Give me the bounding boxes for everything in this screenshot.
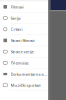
button[interactable]: Crtani — [0, 24, 48, 35]
button[interactable]: TV emisije — [0, 57, 48, 69]
button[interactable]: Filmovi — [0, 1, 48, 13]
staticText: Serije — [10, 15, 20, 21]
staticText: TV emisije — [10, 60, 28, 66]
button[interactable]: Strani filmovi — [0, 35, 48, 46]
staticText: Muzički spotovi — [10, 82, 40, 88]
button[interactable]: Strane serije — [0, 46, 48, 57]
staticText: Dokumentarne emisije — [10, 71, 48, 77]
staticText: Filmovi — [10, 4, 23, 10]
staticText: Strani filmovi — [10, 38, 34, 43]
button[interactable]: Dokumentarne emisije — [0, 69, 48, 80]
button[interactable]: Muzički spotovi — [0, 80, 48, 91]
staticText: Strane serije — [10, 49, 33, 54]
button[interactable]: Serije — [0, 13, 48, 24]
staticText: Crtani — [10, 26, 22, 32]
